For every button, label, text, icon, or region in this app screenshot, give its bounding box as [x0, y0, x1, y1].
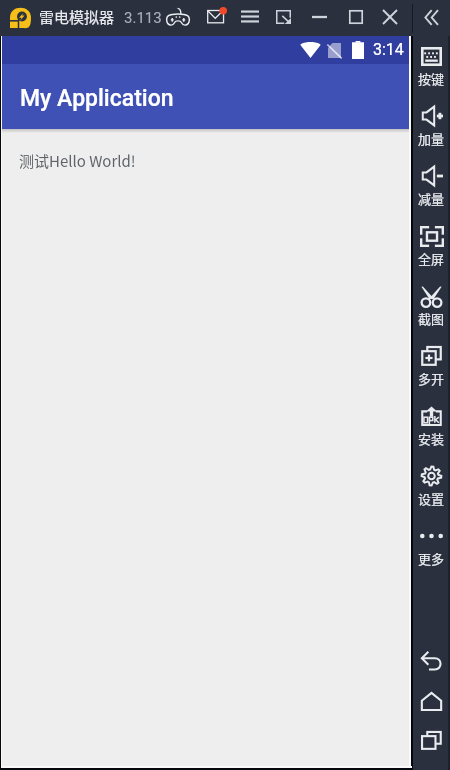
staticText: 按键: [418, 69, 445, 88]
button[interactable]: Recent apps: [413, 724, 450, 756]
button[interactable]: 全屏: [413, 222, 450, 269]
button[interactable]: Resize window: [272, 6, 295, 28]
button[interactable]: Gamepad: [162, 4, 194, 30]
staticText: 3:14: [373, 40, 404, 59]
button[interactable]: 设置: [413, 462, 450, 509]
staticText: 设置: [418, 489, 445, 508]
staticText: 测试Hello World!: [19, 150, 136, 172]
button[interactable]: Close: [379, 6, 401, 28]
staticText: 截图: [418, 309, 445, 328]
button[interactable]: Messages: [203, 5, 229, 28]
staticText: 多开: [418, 369, 445, 388]
staticText: 加量: [418, 129, 445, 148]
button[interactable]: Minimize: [308, 6, 331, 28]
button[interactable]: LDPlayer: [10, 7, 32, 28]
button[interactable]: Menu: [237, 6, 263, 27]
button[interactable]: 按键: [413, 42, 450, 89]
button[interactable]: 安装: [413, 402, 450, 449]
button[interactable]: 截图: [413, 282, 450, 329]
button[interactable]: Home: [413, 685, 450, 717]
button[interactable]: 减量: [413, 162, 450, 209]
button[interactable]: Collapse sidebar: [420, 5, 442, 30]
staticText: 减量: [418, 189, 445, 208]
button[interactable]: 加量: [413, 102, 450, 149]
button[interactable]: Maximize: [345, 6, 367, 28]
staticText: 全屏: [418, 249, 445, 268]
button[interactable]: Back: [413, 644, 450, 676]
staticText: 3.113: [124, 9, 162, 27]
button[interactable]: 多开: [413, 342, 450, 389]
button[interactable]: 更多: [413, 522, 450, 569]
staticText: 更多: [418, 549, 445, 568]
staticText: 安装: [418, 429, 445, 448]
staticText: 雷电模拟器: [39, 6, 115, 28]
staticText: My Application: [20, 85, 174, 112]
